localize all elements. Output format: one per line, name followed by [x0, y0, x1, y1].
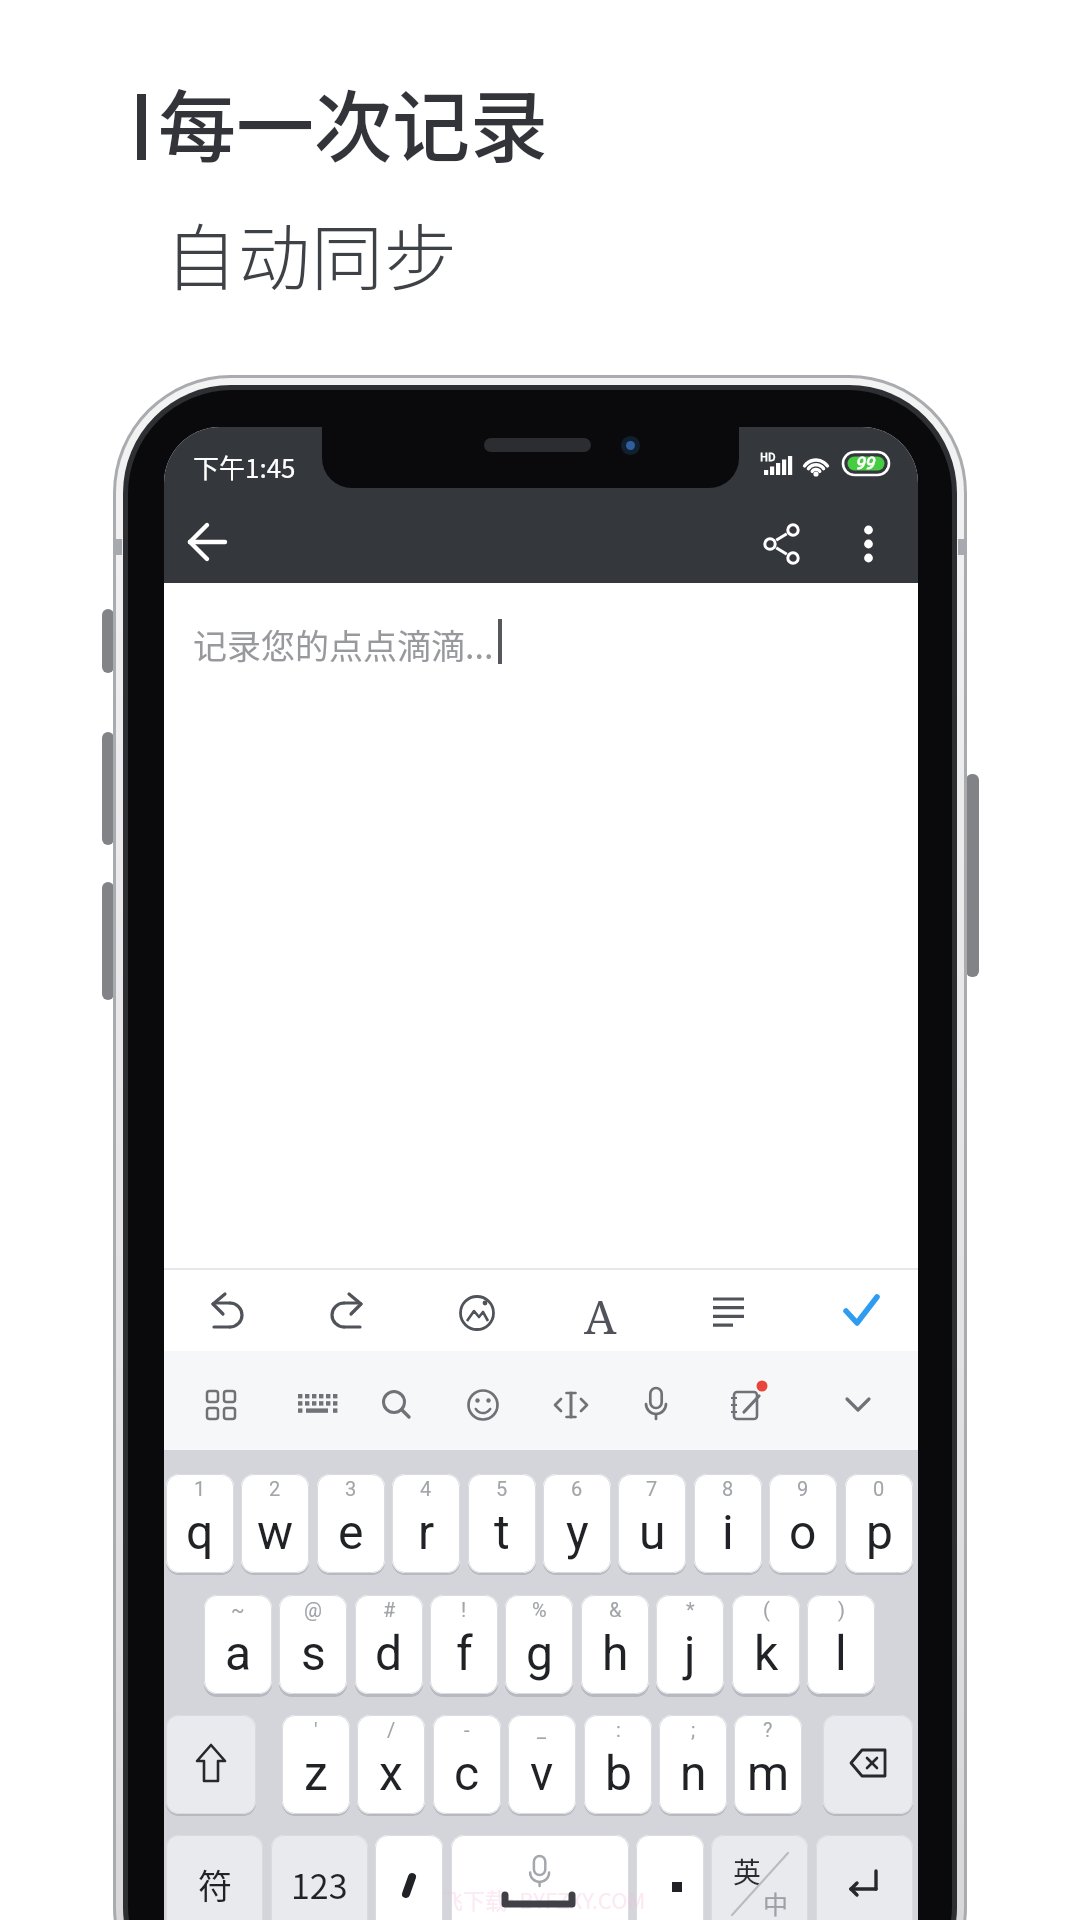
button[interactable]: &: [581, 1595, 649, 1694]
button[interactable]: ~: [204, 1595, 272, 1694]
staticText: _: [537, 1718, 547, 1741]
staticText: 英: [733, 1851, 762, 1892]
staticText: c: [454, 1745, 480, 1801]
button[interactable]: [735, 1373, 799, 1437]
button[interactable]: 符: [166, 1835, 263, 1920]
staticText: 99: [855, 453, 875, 473]
button[interactable]: :: [584, 1715, 652, 1814]
button[interactable]: 8: [694, 1474, 762, 1573]
button[interactable]: [180, 515, 236, 571]
button[interactable]: 0: [845, 1474, 913, 1573]
staticText: o: [789, 1504, 817, 1560]
button[interactable]: [570, 1281, 634, 1345]
staticText: s: [301, 1625, 326, 1681]
button[interactable]: [192, 1281, 256, 1345]
button[interactable]: [189, 1373, 253, 1437]
button[interactable]: 6: [543, 1474, 611, 1573]
staticText: 2: [269, 1477, 281, 1500]
staticText: 每一次记录: [158, 66, 549, 179]
button[interactable]: 5: [468, 1474, 536, 1573]
button[interactable]: ;: [659, 1715, 727, 1814]
staticText: ?: [763, 1718, 773, 1741]
button[interactable]: 3: [317, 1474, 385, 1573]
staticText: p: [866, 1504, 893, 1560]
staticText: 3: [345, 1477, 357, 1500]
staticText: n: [680, 1745, 707, 1801]
button[interactable]: 4: [392, 1474, 460, 1573]
button[interactable]: /: [357, 1715, 425, 1814]
button[interactable]: [462, 1373, 526, 1437]
staticText: %: [532, 1598, 547, 1621]
staticText: f: [456, 1625, 473, 1681]
staticText: ': [314, 1718, 318, 1741]
button[interactable]: ': [282, 1715, 350, 1814]
button[interactable]: [318, 1281, 382, 1345]
staticText: j: [684, 1625, 696, 1681]
button[interactable]: 2: [241, 1474, 309, 1573]
staticText: k: [754, 1625, 779, 1681]
staticText: 6: [571, 1477, 583, 1500]
button[interactable]: [823, 1715, 913, 1814]
button[interactable]: [826, 1373, 890, 1437]
staticText: 7: [646, 1477, 658, 1500]
button[interactable]: [816, 1835, 913, 1920]
button[interactable]: 1: [166, 1474, 234, 1573]
staticText: y: [566, 1504, 589, 1560]
button[interactable]: [451, 1835, 629, 1920]
button[interactable]: [644, 1373, 708, 1437]
staticText: 记录您的点点滴滴...: [193, 620, 494, 669]
staticText: w: [257, 1504, 294, 1560]
button[interactable]: ?: [734, 1715, 802, 1814]
staticText: q: [186, 1504, 214, 1560]
button[interactable]: #: [355, 1595, 423, 1694]
button[interactable]: %: [505, 1595, 573, 1694]
staticText: /: [387, 1718, 396, 1741]
staticText: HD: [760, 448, 776, 464]
staticText: *: [686, 1598, 695, 1621]
button[interactable]: [375, 1835, 443, 1920]
staticText: 0: [873, 1477, 885, 1500]
staticText: x: [379, 1745, 403, 1801]
button[interactable]: [696, 1281, 760, 1345]
staticText: 123: [291, 1860, 348, 1909]
button[interactable]: _: [508, 1715, 576, 1814]
button[interactable]: 123: [271, 1835, 368, 1920]
button[interactable]: [280, 1373, 344, 1437]
staticText: z: [304, 1745, 328, 1801]
staticText: m: [747, 1745, 790, 1801]
staticText: r: [418, 1504, 435, 1560]
button[interactable]: ): [807, 1595, 875, 1694]
button[interactable]: [754, 516, 810, 572]
staticText: t: [494, 1504, 510, 1560]
staticText: ;: [691, 1718, 696, 1741]
button[interactable]: (: [732, 1595, 800, 1694]
button[interactable]: [371, 1373, 435, 1437]
staticText: (: [763, 1598, 770, 1621]
staticText: 符: [198, 1860, 232, 1909]
staticText: @: [304, 1598, 322, 1621]
button[interactable]: [636, 1835, 704, 1920]
button[interactable]: 7: [618, 1474, 686, 1573]
staticText: v: [530, 1745, 554, 1801]
button[interactable]: -: [433, 1715, 501, 1814]
button[interactable]: *: [656, 1595, 724, 1694]
staticText: i: [722, 1504, 734, 1560]
button[interactable]: [553, 1373, 617, 1437]
staticText: 5: [496, 1477, 508, 1500]
button[interactable]: 9: [769, 1474, 837, 1573]
staticText: 4: [420, 1477, 432, 1500]
staticText: a: [225, 1625, 252, 1681]
button[interactable]: @: [279, 1595, 347, 1694]
button[interactable]: !: [430, 1595, 498, 1694]
staticText: h: [602, 1625, 629, 1681]
button[interactable]: [444, 1281, 508, 1345]
button[interactable]: [840, 516, 896, 572]
staticText: !: [461, 1598, 467, 1621]
staticText: g: [526, 1625, 553, 1681]
staticText: 飞下载~BYFZXY.COM: [441, 1883, 646, 1915]
button[interactable]: 英: [711, 1835, 808, 1920]
button[interactable]: [822, 1281, 886, 1345]
button[interactable]: [166, 1715, 256, 1814]
staticText: ): [838, 1598, 845, 1621]
staticText: &: [609, 1598, 622, 1621]
